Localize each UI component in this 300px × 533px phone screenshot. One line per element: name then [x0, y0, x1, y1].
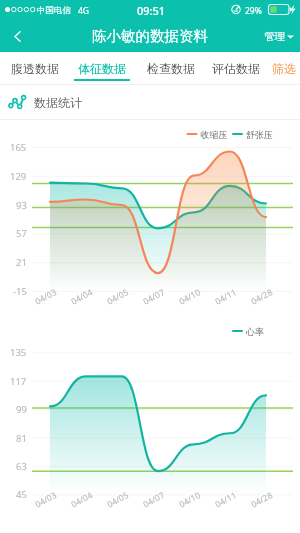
staticText: 检查数据	[147, 61, 195, 76]
staticText: 09:51	[137, 3, 166, 18]
staticText: 陈小敏的数据资料	[92, 27, 208, 45]
staticText: 29%	[245, 5, 262, 17]
staticText: 评估数据	[212, 61, 260, 76]
button[interactable]: 体征数据	[74, 52, 130, 85]
button[interactable]: 管理	[256, 20, 300, 52]
staticText: 体征数据	[78, 61, 126, 76]
button[interactable]: Back	[0, 20, 34, 52]
button[interactable]: 筛选	[269, 52, 298, 85]
staticText: 4G	[78, 5, 90, 17]
staticText: 管理	[264, 30, 285, 43]
button[interactable]: 检查数据	[142, 52, 199, 85]
staticText: 腹透数据	[11, 61, 59, 76]
staticText: 数据统计	[34, 95, 82, 110]
staticText: 筛选	[272, 61, 296, 76]
staticText: 中国电信	[37, 5, 71, 16]
button[interactable]: 腹透数据	[7, 52, 63, 85]
button[interactable]: 评估数据	[208, 52, 264, 85]
